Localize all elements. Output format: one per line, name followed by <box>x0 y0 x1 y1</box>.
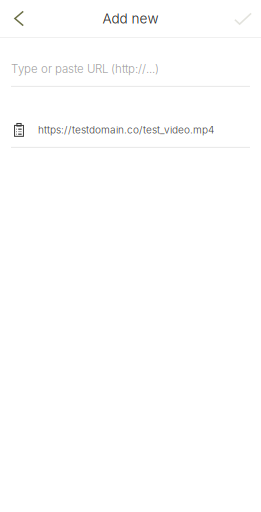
button[interactable]: Back <box>0 0 36 37</box>
button[interactable]: https://testdomain.co/test_video.mp4 <box>0 87 261 148</box>
staticText: Type or paste URL (http://...) <box>11 62 159 76</box>
button[interactable]: Type or paste URL (http://...) <box>0 38 261 87</box>
button[interactable]: Done <box>222 0 261 37</box>
staticText: Add new <box>102 10 158 27</box>
staticText: https://testdomain.co/test_video.mp4 <box>38 124 214 136</box>
